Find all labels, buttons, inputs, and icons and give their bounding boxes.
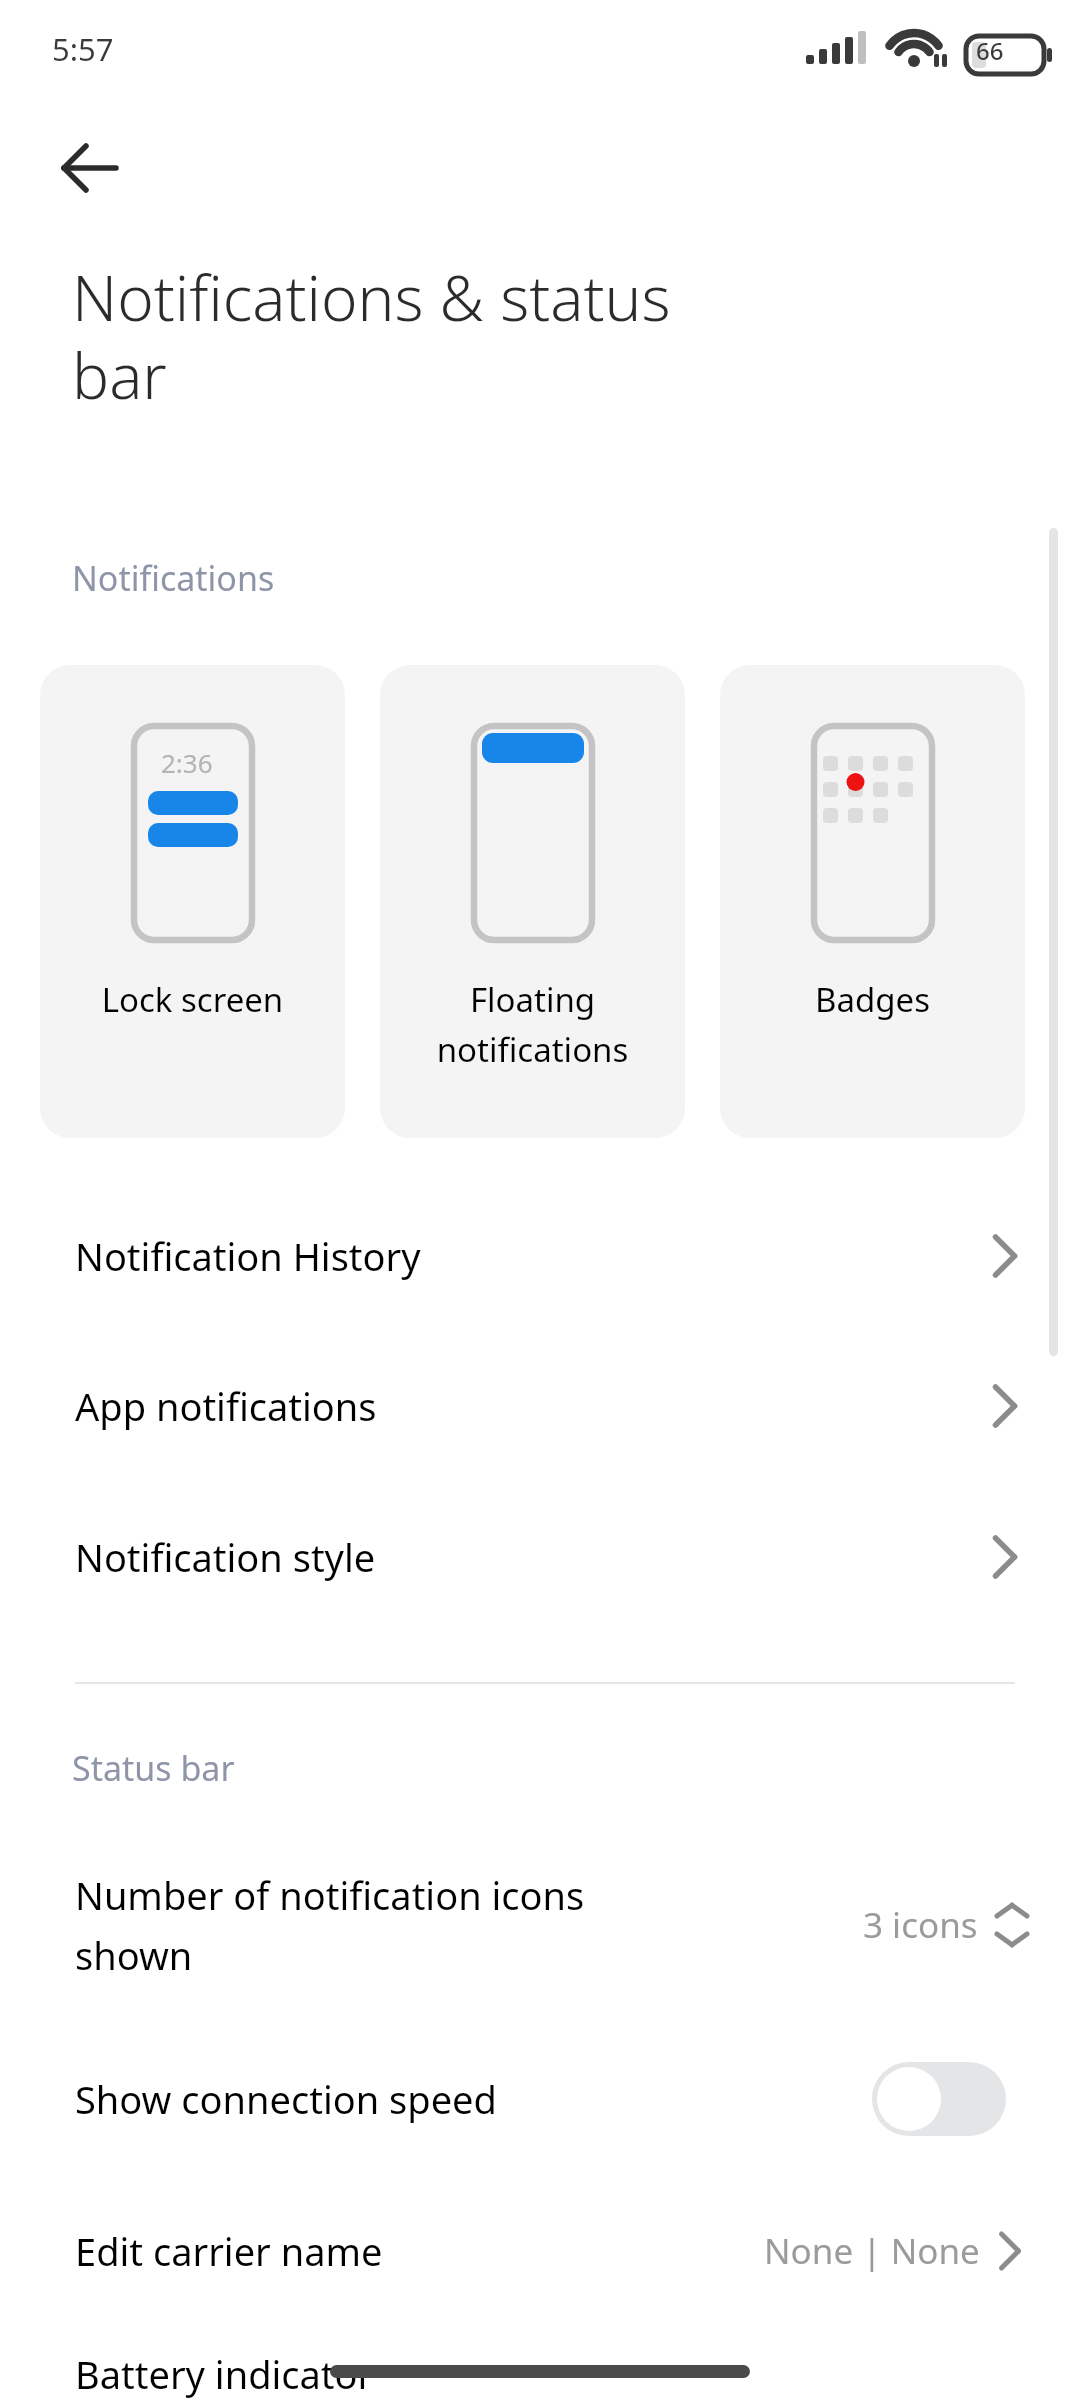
staticText: Notification History — [75, 1230, 421, 1282]
staticText: Notifications — [72, 555, 275, 601]
button[interactable]: Show connection speed — [0, 2038, 1080, 2160]
button[interactable]: 2:36 — [40, 665, 345, 1138]
staticText: Badges — [720, 977, 1025, 1022]
staticText: Edit carrier name — [75, 2225, 383, 2277]
staticText: 5:57 — [52, 28, 114, 70]
button[interactable]: Number of notification icons shown — [0, 1840, 1080, 2010]
button[interactable]: Edit carrier name — [0, 2190, 1080, 2312]
button[interactable]: Notification style — [0, 1496, 1080, 1618]
staticText: Floating notifications — [380, 977, 685, 1072]
staticText: Notification style — [75, 1531, 376, 1583]
staticText: Number of notification icons shown — [75, 1869, 715, 1981]
staticText: None | None — [764, 2227, 980, 2275]
button[interactable]: Badges — [720, 665, 1025, 1138]
staticText: Show connection speed — [75, 2073, 497, 2125]
button[interactable]: Notification History — [0, 1195, 1080, 1317]
staticText: Battery indicator — [75, 2348, 374, 2400]
staticText: Notifications & status bar — [72, 255, 671, 417]
button[interactable]: App notifications — [0, 1345, 1080, 1467]
staticText: Status bar — [72, 1745, 235, 1791]
button[interactable]: Back — [42, 120, 138, 216]
button[interactable]: Floating notifications — [380, 665, 685, 1138]
staticText: 2:36 — [161, 745, 213, 780]
staticText: App notifications — [75, 1380, 377, 1432]
staticText: 3 icons — [863, 1901, 978, 1949]
staticText: Lock screen — [40, 977, 345, 1022]
button[interactable]: Show connection speed toggle — [872, 2062, 1006, 2136]
staticText: 66 — [976, 34, 1004, 67]
